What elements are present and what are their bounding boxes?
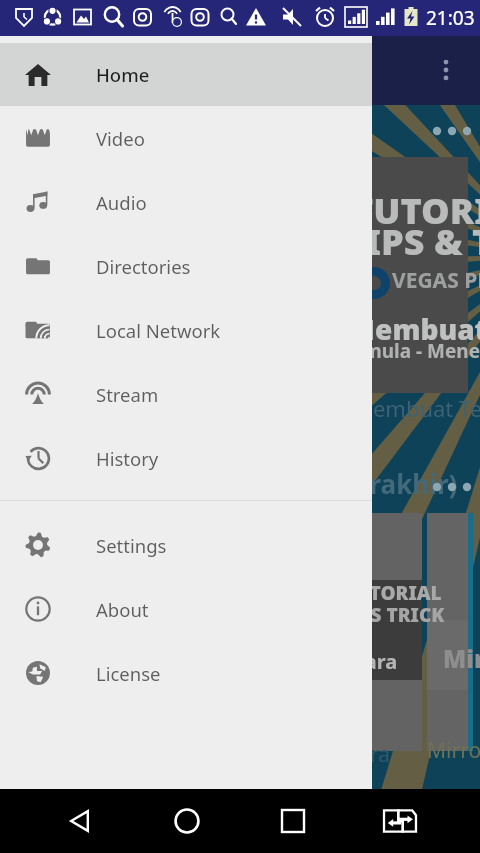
staticText: Mirro [427, 736, 480, 765]
button[interactable]: Video [0, 106, 372, 170]
staticText: Mir [443, 642, 480, 675]
staticText: Cara Membuat Tex [300, 393, 480, 423]
staticText: TUTORIAL [352, 186, 480, 235]
button[interactable]: Local Network [0, 298, 372, 362]
button[interactable]: License [0, 641, 372, 705]
staticText: Local Network [96, 318, 221, 343]
staticText: TIPS TRICK [339, 602, 445, 628]
button[interactable]: Screenshot [374, 795, 426, 847]
staticText: About [96, 597, 149, 622]
button[interactable]: Home [0, 43, 372, 106]
button[interactable]: Directories [0, 234, 372, 298]
staticText: Pemula - Menen [340, 338, 480, 364]
staticText: Home [96, 62, 150, 87]
staticText: Cara [352, 648, 398, 675]
staticText: Video [96, 126, 145, 151]
staticText: Cara [345, 740, 391, 769]
button[interactable]: About [0, 577, 372, 641]
staticText: (Terakhir) [332, 466, 458, 501]
staticText: Stream [96, 382, 159, 407]
button[interactable]: Audio [0, 170, 372, 234]
button[interactable]: More options [426, 50, 466, 90]
button[interactable]: Home [161, 795, 213, 847]
button[interactable]: Settings [0, 513, 372, 577]
staticText: History [96, 446, 159, 471]
staticText: 21:03 [426, 5, 475, 31]
button[interactable]: Stream [0, 362, 372, 426]
button[interactable]: History [0, 426, 372, 490]
staticText: TIPS & TRIK [344, 217, 480, 266]
staticText: Membuat T [348, 310, 480, 348]
staticText: Directories [96, 254, 191, 279]
staticText: Audio [96, 190, 147, 215]
staticText: VEGAS PRO [392, 266, 480, 295]
button[interactable]: Back [54, 795, 106, 847]
staticText: TUTORIAL [344, 580, 442, 606]
staticText: License [96, 661, 161, 686]
button[interactable]: Recent apps [267, 795, 319, 847]
staticText: Settings [96, 533, 167, 558]
